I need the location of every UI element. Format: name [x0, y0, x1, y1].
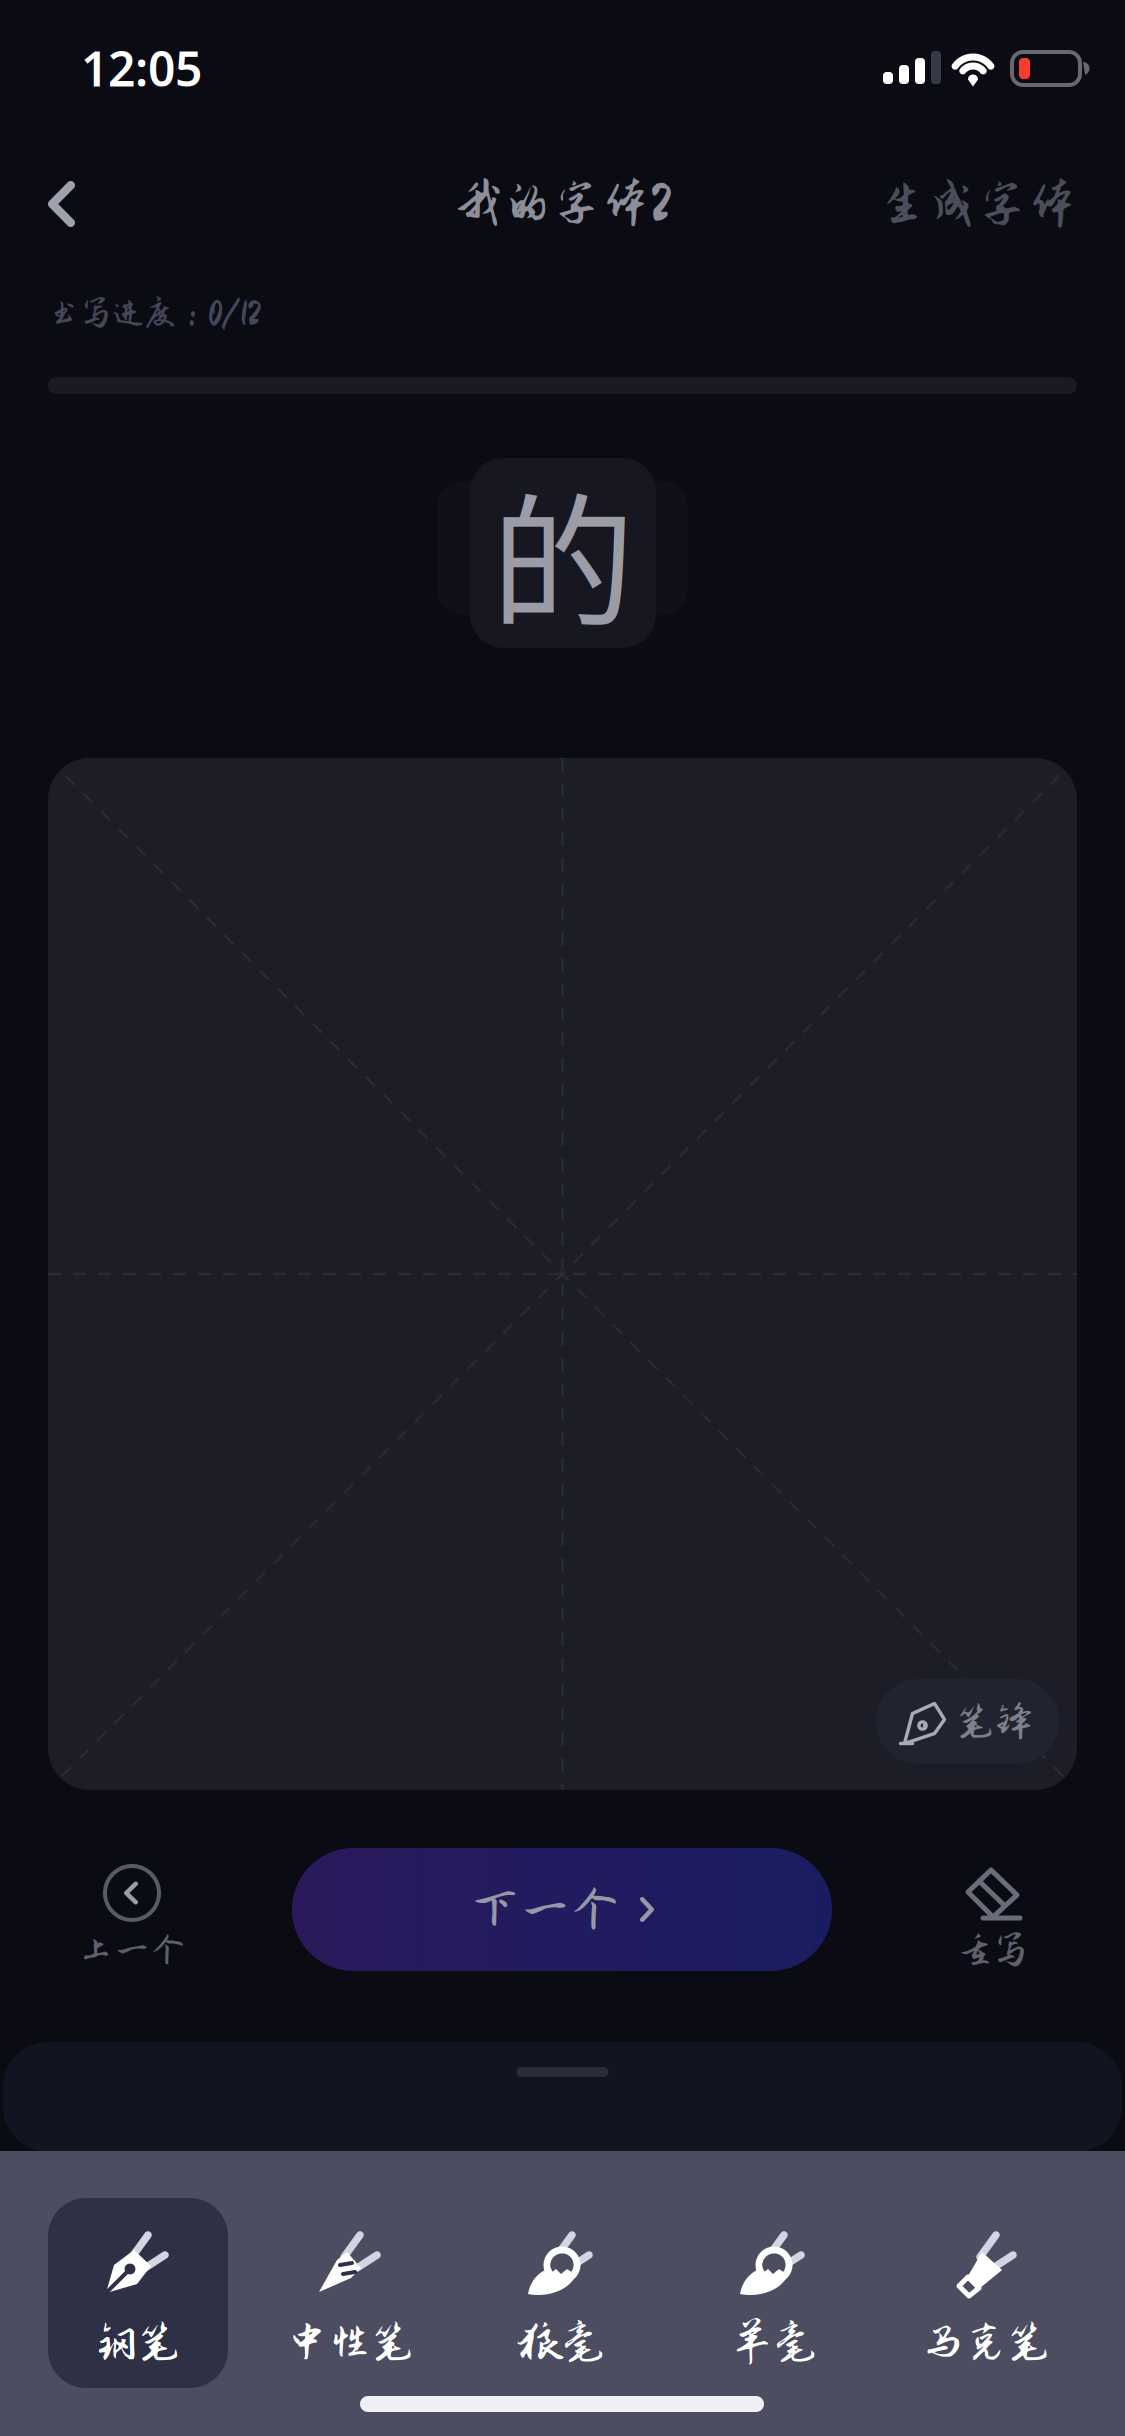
- button[interactable]: 重写: [880, 1850, 1104, 1990]
- button[interactable]: 羊毫: [684, 2198, 864, 2388]
- staticText: 的: [491, 449, 635, 657]
- staticText: 书写进度：0/12: [48, 295, 261, 331]
- button[interactable]: 马克笔: [896, 2198, 1076, 2388]
- staticText: 狼毫: [519, 2318, 605, 2366]
- button[interactable]: 上一个: [20, 1850, 244, 1990]
- staticText: 马克笔: [921, 2318, 1050, 2366]
- staticText: 羊毫: [731, 2318, 817, 2366]
- staticText: 上一个: [78, 1930, 186, 1970]
- button[interactable]: 下一个: [292, 1848, 832, 1971]
- button[interactable]: 狼毫: [472, 2198, 652, 2388]
- staticText: 重写: [957, 1930, 1029, 1970]
- staticText: 我的字体2: [454, 176, 671, 230]
- button[interactable]: 生成字体: [855, 159, 1077, 249]
- staticText: 下一个: [470, 1881, 620, 1937]
- button[interactable]: 的: [470, 458, 656, 648]
- button[interactable]: 钢笔: [48, 2198, 228, 2388]
- staticText: 12:05: [81, 36, 202, 100]
- button[interactable]: 笔锋: [876, 1679, 1059, 1764]
- button[interactable]: Back: [26, 158, 97, 250]
- staticText: 中性笔: [285, 2318, 414, 2366]
- button[interactable]: 中性笔: [260, 2198, 440, 2388]
- staticText: 钢笔: [95, 2318, 181, 2366]
- staticText: 笔锋: [956, 1700, 1032, 1743]
- staticText: 生成字体: [877, 176, 1077, 232]
